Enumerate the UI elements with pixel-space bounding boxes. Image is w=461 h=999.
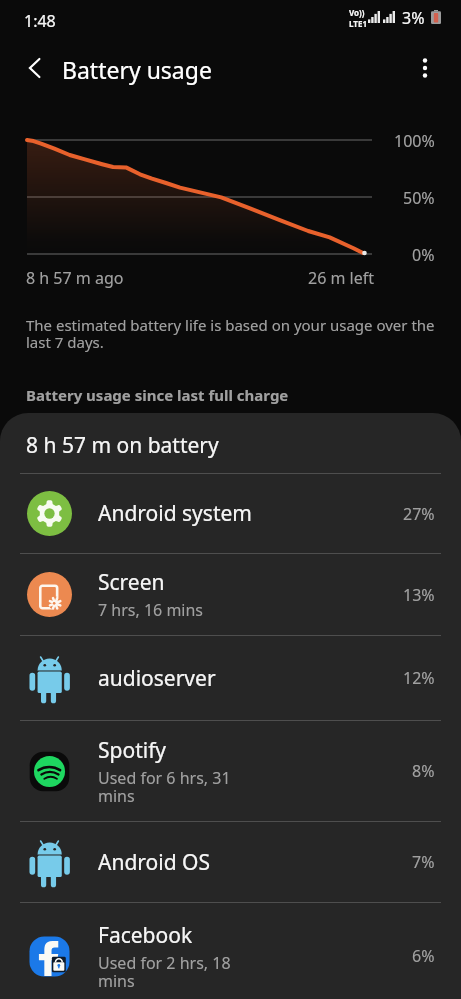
staticText: 1:48 bbox=[24, 10, 56, 32]
staticText: 7% bbox=[412, 851, 435, 873]
staticText: Battery usage bbox=[62, 54, 212, 85]
staticText: 100% bbox=[394, 130, 435, 152]
staticText: audioserver bbox=[98, 664, 216, 693]
staticText: 26 m left bbox=[308, 267, 375, 289]
staticText: Used for 6 hrs, 31 mins bbox=[98, 767, 231, 807]
button[interactable]: More options bbox=[401, 44, 449, 92]
staticText: 12% bbox=[403, 667, 435, 689]
button[interactable]: Spotify bbox=[0, 721, 461, 821]
staticText: Spotify bbox=[98, 736, 167, 765]
staticText: Screen bbox=[98, 568, 165, 597]
staticText: Used for 2 hrs, 18 mins bbox=[98, 952, 231, 992]
staticText: The estimated battery life is based on y… bbox=[26, 315, 435, 353]
button[interactable]: audioserver bbox=[0, 636, 461, 720]
staticText: Vo)) bbox=[349, 7, 365, 18]
button[interactable]: Android system bbox=[0, 474, 461, 553]
staticText: 50% bbox=[403, 187, 435, 209]
button[interactable]: Facebook bbox=[0, 903, 461, 999]
staticText: 8% bbox=[412, 760, 435, 782]
staticText: Android system bbox=[98, 499, 252, 528]
button[interactable]: Back bbox=[11, 44, 59, 92]
staticText: 3% bbox=[402, 7, 425, 27]
staticText: 7 hrs, 16 mins bbox=[98, 599, 204, 621]
staticText: 13% bbox=[403, 584, 435, 606]
staticText: Android OS bbox=[98, 848, 210, 877]
staticText: Battery usage since last full charge bbox=[26, 385, 289, 405]
staticText: 8 h 57 m on battery bbox=[26, 431, 219, 460]
button[interactable]: Android OS bbox=[0, 822, 461, 902]
staticText: 0% bbox=[412, 244, 435, 266]
staticText: 6% bbox=[412, 945, 435, 967]
button[interactable]: Screen bbox=[0, 554, 461, 635]
staticText: Facebook bbox=[98, 921, 193, 950]
staticText: 8 h 57 m ago bbox=[26, 267, 124, 289]
staticText: LTE1 bbox=[349, 18, 367, 27]
staticText: 27% bbox=[403, 503, 435, 525]
